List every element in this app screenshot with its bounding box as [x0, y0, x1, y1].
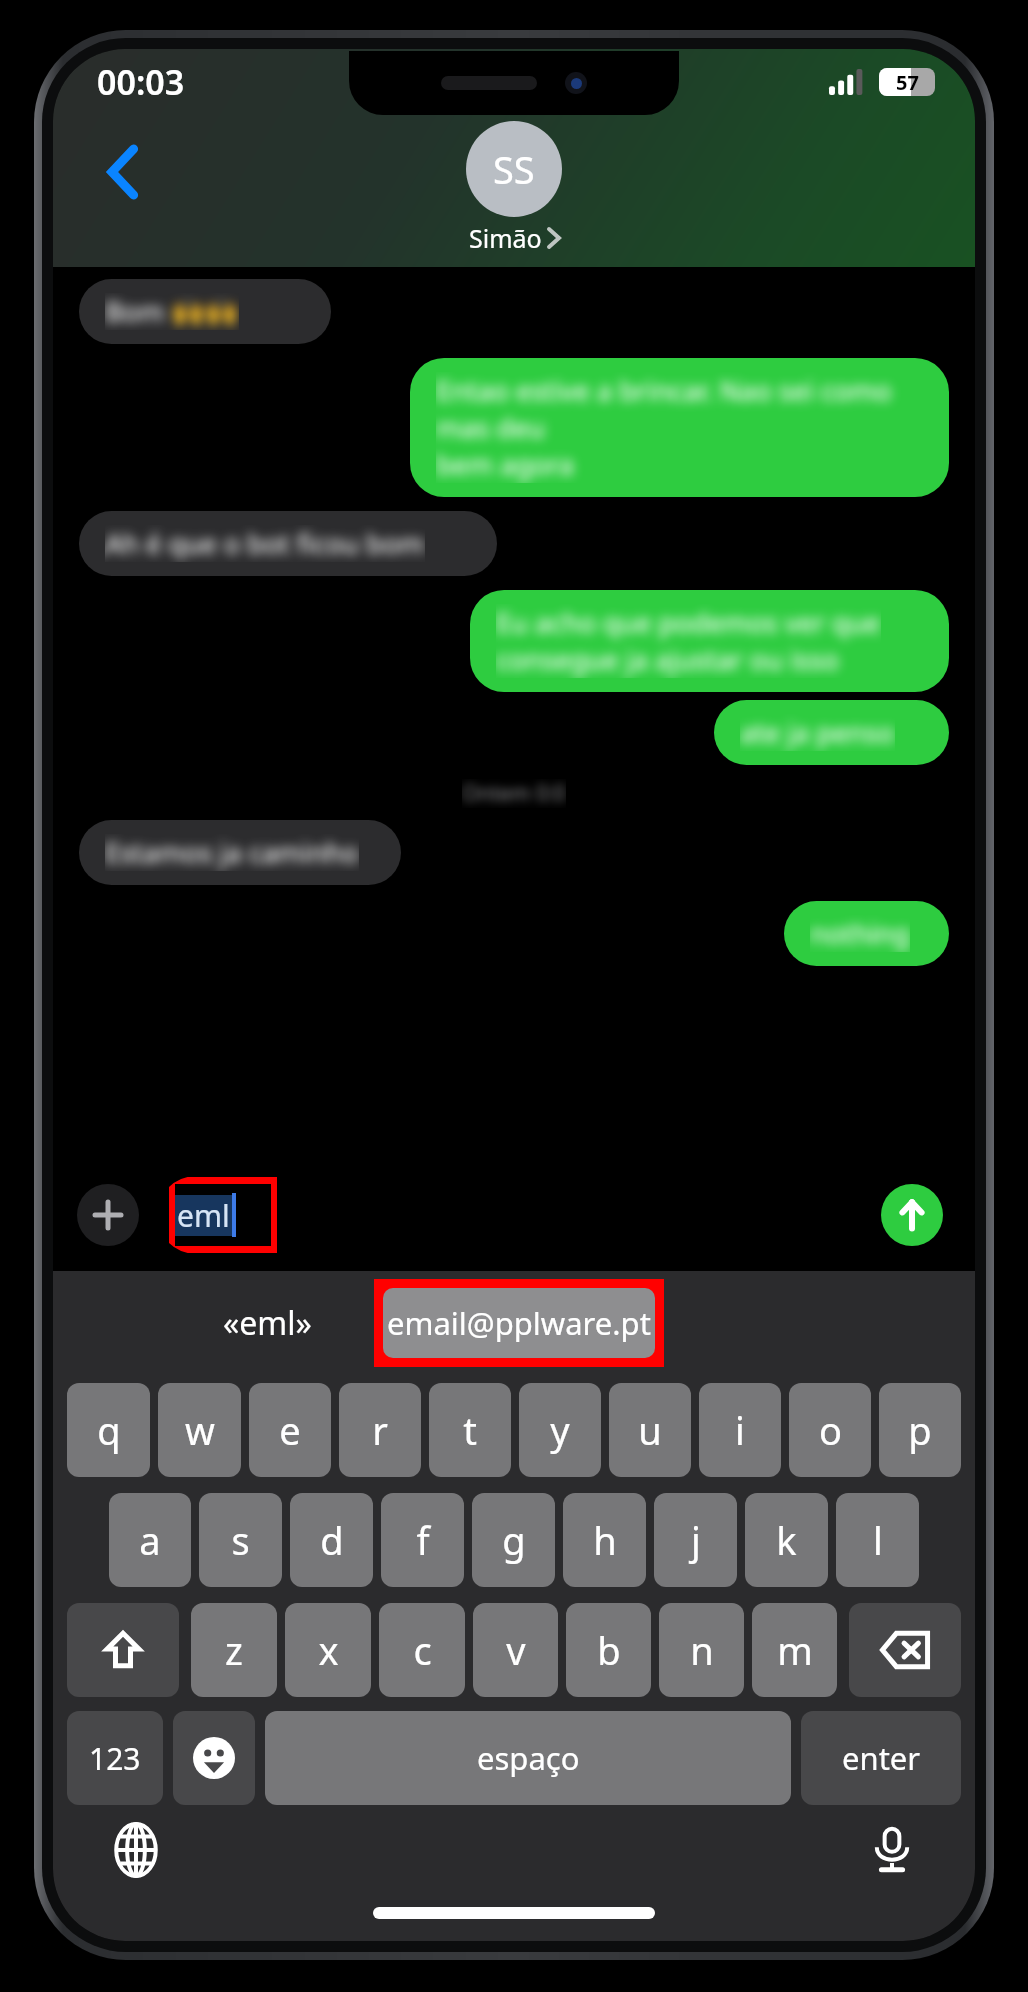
button[interactable]: o — [789, 1383, 871, 1477]
button[interactable]: espaço — [265, 1711, 791, 1805]
button[interactable]: Backspace — [849, 1603, 961, 1697]
button[interactable]: Eu acho que podemos ver que consegue ja … — [496, 604, 923, 678]
staticText: l — [873, 1514, 883, 1566]
staticText: SS — [493, 143, 535, 195]
staticText: n — [690, 1624, 714, 1676]
staticText: a — [139, 1514, 161, 1566]
button[interactable]: p — [879, 1383, 961, 1477]
staticText: Entao estive a brincar. Nao sei como mas… — [436, 372, 923, 483]
staticText: 123 — [89, 1738, 141, 1779]
button[interactable]: email@pplware.pt — [383, 1288, 655, 1358]
staticText: m — [777, 1624, 813, 1676]
staticText: p — [908, 1404, 932, 1456]
button[interactable]: g — [472, 1493, 555, 1587]
button[interactable]: e — [249, 1383, 331, 1477]
staticText: z — [225, 1624, 243, 1676]
staticText: i — [735, 1404, 745, 1456]
staticText: enter — [842, 1737, 921, 1779]
button[interactable]: z — [191, 1603, 277, 1697]
staticText: d — [320, 1514, 344, 1566]
staticText: Ah é que o bot ficou bom — [105, 525, 425, 562]
staticText: 57 — [896, 69, 919, 96]
button[interactable]: nothing — [810, 915, 923, 952]
button[interactable]: f — [381, 1493, 464, 1587]
button[interactable]: m — [752, 1603, 837, 1697]
button[interactable]: ate ja penso — [740, 714, 923, 751]
staticText: espaço — [477, 1737, 580, 1779]
staticText: q — [97, 1404, 121, 1456]
button[interactable]: Entao estive a brincar. Nao sei como mas… — [436, 372, 923, 483]
staticText: 00:03 — [97, 59, 185, 105]
staticText: Eu acho que podemos ver que consegue ja … — [496, 604, 881, 678]
staticText: ate ja penso — [740, 714, 895, 751]
staticText: email@pplware.pt — [387, 1302, 651, 1344]
button[interactable]: s — [199, 1493, 282, 1587]
staticText: x — [318, 1624, 339, 1676]
staticText: t — [463, 1404, 477, 1456]
staticText: f — [416, 1514, 430, 1566]
button[interactable]: v — [473, 1603, 558, 1697]
button[interactable]: SS — [466, 121, 562, 255]
button[interactable]: Ah é que o bot ficou bom — [105, 525, 471, 562]
button[interactable]: n — [659, 1603, 744, 1697]
staticText: s — [231, 1514, 250, 1566]
button[interactable]: y — [519, 1383, 601, 1477]
button[interactable]: h — [563, 1493, 646, 1587]
button[interactable]: j — [654, 1493, 737, 1587]
button[interactable]: x — [285, 1603, 371, 1697]
button[interactable]: Change keyboard — [105, 1819, 167, 1881]
staticText: eml — [177, 1195, 230, 1236]
button[interactable]: w — [158, 1383, 241, 1477]
staticText: k — [776, 1514, 797, 1566]
staticText: w — [185, 1404, 215, 1456]
staticText: Bom 🙌🙌 — [105, 293, 239, 330]
button[interactable]: d — [290, 1493, 373, 1587]
staticText: g — [502, 1514, 526, 1566]
staticText: c — [413, 1624, 432, 1676]
staticText: Ontem 0:0 — [462, 779, 566, 808]
button[interactable]: i — [699, 1383, 781, 1477]
button[interactable]: Send — [881, 1184, 943, 1246]
staticText: v — [506, 1624, 526, 1676]
staticText: o — [819, 1404, 842, 1456]
button[interactable]: l — [836, 1493, 919, 1587]
button[interactable]: k — [745, 1493, 828, 1587]
button[interactable]: 123 — [67, 1711, 163, 1805]
staticText: Estamos ja caminho — [105, 834, 359, 871]
staticText: Simão — [469, 221, 542, 255]
button[interactable]: Back — [91, 139, 157, 205]
button[interactable]: c — [379, 1603, 465, 1697]
button[interactable]: Bom 🙌🙌 — [105, 293, 305, 330]
button[interactable]: q — [67, 1383, 150, 1477]
button[interactable]: Dictate — [861, 1819, 923, 1881]
staticText: e — [279, 1404, 301, 1456]
button[interactable]: r — [339, 1383, 421, 1477]
button[interactable]: «eml» — [223, 1301, 312, 1345]
staticText: y — [550, 1404, 570, 1456]
staticText: r — [372, 1404, 388, 1456]
button[interactable]: Emoji — [173, 1711, 255, 1805]
button[interactable]: Estamos ja caminho — [105, 834, 375, 871]
staticText: nothing — [810, 915, 910, 952]
button[interactable]: t — [429, 1383, 511, 1477]
button[interactable]: enter — [801, 1711, 961, 1805]
button[interactable]: a — [109, 1493, 191, 1587]
button[interactable]: eml — [157, 1176, 951, 1254]
button[interactable]: u — [609, 1383, 691, 1477]
button[interactable]: b — [566, 1603, 651, 1697]
button[interactable]: Add attachment — [77, 1184, 139, 1246]
button[interactable]: Shift — [67, 1603, 179, 1697]
staticText: u — [638, 1404, 662, 1456]
staticText: b — [597, 1624, 621, 1676]
staticText: j — [691, 1514, 701, 1566]
staticText: h — [593, 1514, 617, 1566]
